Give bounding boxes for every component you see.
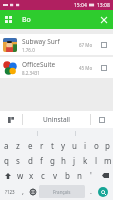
staticText: 8.2.3431 [22, 70, 40, 76]
staticText: 13:08 [97, 2, 110, 9]
staticText: ?123 [5, 189, 15, 195]
button[interactable]: l [91, 153, 102, 168]
button[interactable]: Select OfficeSuite [98, 62, 109, 73]
button[interactable]: o [91, 138, 102, 153]
button[interactable]: j [69, 153, 80, 168]
button[interactable]: p [102, 138, 113, 153]
button[interactable]: h [58, 153, 69, 168]
staticText: t [51, 140, 54, 151]
button[interactable]: r [36, 138, 47, 153]
staticText: x [29, 170, 34, 181]
button[interactable]: ?123 [2, 185, 18, 198]
staticText: q [4, 155, 9, 166]
button[interactable]: Subway Surf [0, 34, 113, 55]
staticText: 1.76.0 [22, 47, 35, 53]
button[interactable]: Français [39, 185, 85, 198]
staticText: v [53, 170, 58, 181]
staticText: k [83, 155, 88, 166]
button[interactable]: b [61, 168, 73, 183]
staticText: r [40, 140, 44, 151]
staticText: Uninstall [43, 115, 70, 124]
button[interactable]: t [47, 138, 58, 153]
staticText: w [17, 170, 24, 181]
staticText: . [90, 187, 92, 197]
staticText: 67 Mo [79, 42, 93, 48]
staticText: o [94, 140, 99, 151]
staticText: y [61, 140, 66, 151]
staticText: Subway Surf [22, 37, 60, 46]
button[interactable]: Sort [0, 111, 22, 128]
button[interactable]: s [12, 153, 24, 168]
button[interactable]: w [15, 168, 26, 183]
button[interactable]: u [69, 138, 80, 153]
staticText: n [77, 170, 82, 181]
staticText: 15:04 [74, 2, 87, 9]
staticText: u [72, 140, 77, 151]
button[interactable]: e [24, 138, 36, 153]
button[interactable]: Select Subway Surf [98, 39, 109, 50]
staticText: Bo [22, 15, 31, 25]
staticText: j [73, 155, 76, 166]
button[interactable]: Search [95, 185, 111, 198]
staticText: c [41, 170, 45, 181]
staticText: g [50, 155, 55, 166]
button[interactable]: n [73, 168, 85, 183]
staticText: , [22, 187, 24, 197]
button[interactable]: y [58, 138, 69, 153]
button[interactable]: g [47, 153, 58, 168]
staticText: a [4, 140, 9, 151]
button[interactable]: q [0, 153, 12, 168]
staticText: OfficeSuite [22, 60, 56, 69]
staticText: 45 Mo [79, 65, 93, 71]
button[interactable]: . [86, 185, 95, 198]
button[interactable]: Apps [4, 15, 13, 24]
staticText: f [40, 155, 43, 166]
staticText: Français [53, 189, 71, 195]
staticText: h [61, 155, 66, 166]
staticText: z [16, 140, 20, 151]
button[interactable]: OfficeSuite [0, 57, 113, 78]
button[interactable]: i [80, 138, 91, 153]
staticText: s [16, 155, 20, 166]
button[interactable]: f [36, 153, 47, 168]
staticText: ' [90, 170, 92, 181]
button[interactable]: a [0, 138, 12, 153]
button[interactable]: v [49, 168, 61, 183]
button[interactable]: k [80, 153, 91, 168]
button[interactable]: Clear search [98, 14, 109, 25]
button[interactable]: Uninstall [23, 111, 90, 128]
staticText: i [84, 140, 87, 151]
staticText: e [28, 140, 33, 151]
button[interactable]: Change language [27, 185, 38, 198]
button[interactable]: x [26, 168, 37, 183]
button[interactable]: z [12, 138, 24, 153]
button[interactable]: ' [85, 168, 97, 183]
staticText: b [65, 170, 70, 181]
button[interactable]: d [24, 153, 36, 168]
button[interactable]: Backspace [97, 168, 113, 183]
button[interactable]: , [18, 185, 27, 198]
button[interactable]: c [37, 168, 49, 183]
button[interactable]: m [102, 153, 113, 168]
staticText: m [104, 155, 112, 166]
staticText: l [95, 155, 98, 166]
button[interactable]: Select all [91, 111, 113, 128]
button[interactable]: Shift [0, 168, 15, 183]
staticText: d [28, 155, 33, 166]
staticText: p [105, 140, 110, 151]
